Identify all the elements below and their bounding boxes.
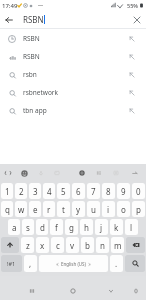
button[interactable]: i bbox=[102, 201, 115, 217]
button[interactable]: Back bbox=[127, 282, 145, 300]
button[interactable]: s bbox=[22, 219, 34, 235]
button[interactable]: r bbox=[43, 201, 55, 217]
button[interactable]: f bbox=[50, 219, 63, 235]
button[interactable]: m bbox=[111, 237, 124, 253]
button[interactable]: 2 bbox=[15, 183, 27, 199]
staticText: 17:49 bbox=[2, 2, 18, 10]
button[interactable]: 5 bbox=[57, 183, 70, 199]
button[interactable]: 8 bbox=[102, 183, 115, 199]
staticText: e bbox=[33, 204, 38, 215]
button[interactable]: Stickers bbox=[51, 167, 63, 179]
staticText: c bbox=[56, 240, 60, 251]
staticText: 1 bbox=[5, 186, 10, 197]
staticText: rsbnetwork bbox=[23, 88, 59, 97]
staticText: 3 bbox=[33, 186, 38, 197]
button[interactable]: t bbox=[57, 201, 70, 217]
button[interactable]: p bbox=[132, 201, 145, 217]
staticText: 6 bbox=[76, 186, 81, 197]
staticText: 55% bbox=[127, 2, 138, 9]
staticText: w bbox=[18, 204, 25, 215]
staticText: RSBN bbox=[23, 52, 40, 61]
staticText: a bbox=[12, 222, 17, 233]
button[interactable]: 6 bbox=[72, 183, 85, 199]
staticText: v bbox=[70, 240, 75, 251]
staticText: z bbox=[26, 240, 30, 251]
staticText: x bbox=[40, 240, 45, 251]
button[interactable]: x bbox=[36, 237, 49, 253]
staticText: n bbox=[100, 240, 105, 251]
button[interactable]: Backspace bbox=[126, 237, 145, 253]
staticText: 2 bbox=[19, 186, 24, 197]
button[interactable]: Back bbox=[2, 13, 16, 27]
button[interactable]: Comma bbox=[24, 255, 37, 272]
button[interactable]: Expand toolbar bbox=[2, 167, 14, 179]
button[interactable]: rsbn bbox=[0, 65, 146, 83]
button[interactable]: 9 bbox=[117, 183, 130, 199]
staticText: f bbox=[55, 222, 58, 233]
button[interactable]: o bbox=[117, 201, 130, 217]
button[interactable]: l bbox=[125, 219, 138, 235]
button[interactable]: z bbox=[21, 237, 34, 253]
button[interactable]: RSBN bbox=[0, 29, 146, 47]
staticText: j bbox=[100, 222, 103, 233]
button[interactable]: Space, English (US) bbox=[39, 255, 108, 272]
button[interactable]: Shift bbox=[1, 237, 19, 253]
button[interactable]: g bbox=[65, 219, 78, 235]
button[interactable]: Insert suggestion bbox=[125, 32, 138, 45]
staticText: RSBN bbox=[23, 34, 40, 43]
button[interactable]: !#1 bbox=[1, 255, 22, 272]
button[interactable]: Emoji bbox=[18, 167, 30, 179]
button[interactable]: q bbox=[1, 201, 13, 217]
button[interactable]: y bbox=[72, 201, 85, 217]
staticText: 7 bbox=[91, 186, 96, 197]
button[interactable]: Home bbox=[64, 282, 82, 300]
staticText: t bbox=[62, 204, 65, 215]
button[interactable]: Insert suggestion bbox=[125, 104, 138, 117]
button[interactable]: n bbox=[96, 237, 109, 253]
button[interactable]: a bbox=[8, 219, 20, 235]
button[interactable]: b bbox=[81, 237, 94, 253]
button[interactable]: h bbox=[80, 219, 93, 235]
button[interactable]: d bbox=[36, 219, 48, 235]
button[interactable]: e bbox=[29, 201, 41, 217]
staticText: rsbn bbox=[23, 70, 37, 79]
button[interactable]: c bbox=[51, 237, 64, 253]
staticText: l bbox=[130, 222, 133, 233]
staticText: 8 bbox=[106, 186, 111, 197]
button[interactable]: Search bbox=[125, 255, 145, 272]
staticText: y bbox=[76, 204, 81, 215]
button[interactable]: RSBN bbox=[0, 47, 146, 65]
button[interactable]: More bbox=[129, 167, 141, 179]
button[interactable]: Period bbox=[110, 255, 123, 272]
staticText: i bbox=[107, 204, 110, 215]
button[interactable]: Clear query bbox=[130, 13, 144, 27]
button[interactable]: j bbox=[95, 219, 108, 235]
staticText: tbn app bbox=[23, 106, 47, 115]
button[interactable]: Modes bbox=[110, 167, 122, 179]
button[interactable]: Insert suggestion bbox=[125, 86, 138, 99]
staticText: !#1 bbox=[7, 260, 16, 267]
staticText: 5 bbox=[61, 186, 66, 197]
staticText: 4 bbox=[47, 186, 52, 197]
button[interactable]: rsbnetwork bbox=[0, 83, 146, 101]
button[interactable]: 3 bbox=[29, 183, 41, 199]
staticText: m bbox=[114, 240, 122, 251]
button[interactable]: Clipboard bbox=[93, 167, 105, 179]
button[interactable]: 1 bbox=[1, 183, 13, 199]
button[interactable]: Insert suggestion bbox=[125, 68, 138, 81]
button[interactable]: v bbox=[66, 237, 79, 253]
button[interactable]: Settings bbox=[76, 167, 88, 179]
staticText: . bbox=[115, 258, 118, 269]
button[interactable]: 0 bbox=[132, 183, 145, 199]
staticText: , bbox=[29, 258, 32, 269]
button[interactable]: Hide keyboard bbox=[102, 282, 120, 300]
button[interactable]: 7 bbox=[87, 183, 100, 199]
button[interactable]: Insert suggestion bbox=[125, 50, 138, 63]
button[interactable]: u bbox=[87, 201, 100, 217]
button[interactable]: Recents bbox=[23, 282, 41, 300]
button[interactable]: tbn app bbox=[0, 101, 146, 119]
button[interactable]: w bbox=[15, 201, 27, 217]
button[interactable]: k bbox=[110, 219, 123, 235]
button[interactable]: 4 bbox=[43, 183, 55, 199]
